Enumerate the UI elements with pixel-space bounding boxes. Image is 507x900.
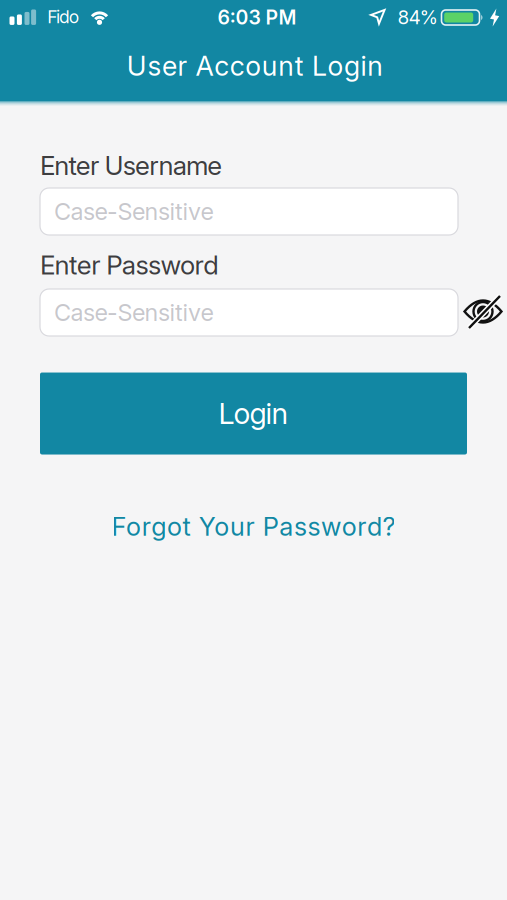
staticText: Forgot Your Password?	[111, 511, 395, 542]
staticText: Fido	[47, 6, 79, 28]
button[interactable]: Show Password	[463, 296, 503, 326]
staticText: 6:03 PM	[217, 5, 296, 29]
staticText: Login	[219, 396, 288, 431]
button[interactable]: Case-Sensitive	[40, 188, 458, 235]
staticText: 84%	[397, 6, 439, 29]
staticText: User Account Login	[127, 50, 383, 82]
staticText: Case-Sensitive	[54, 298, 213, 327]
staticText: Enter Username	[40, 150, 222, 181]
staticText: Case-Sensitive	[54, 197, 213, 226]
button[interactable]: Login	[40, 372, 467, 454]
button[interactable]: Forgot Your Password?	[111, 511, 395, 542]
button[interactable]: Case-Sensitive	[40, 289, 458, 336]
staticText: Enter Password	[40, 249, 219, 281]
